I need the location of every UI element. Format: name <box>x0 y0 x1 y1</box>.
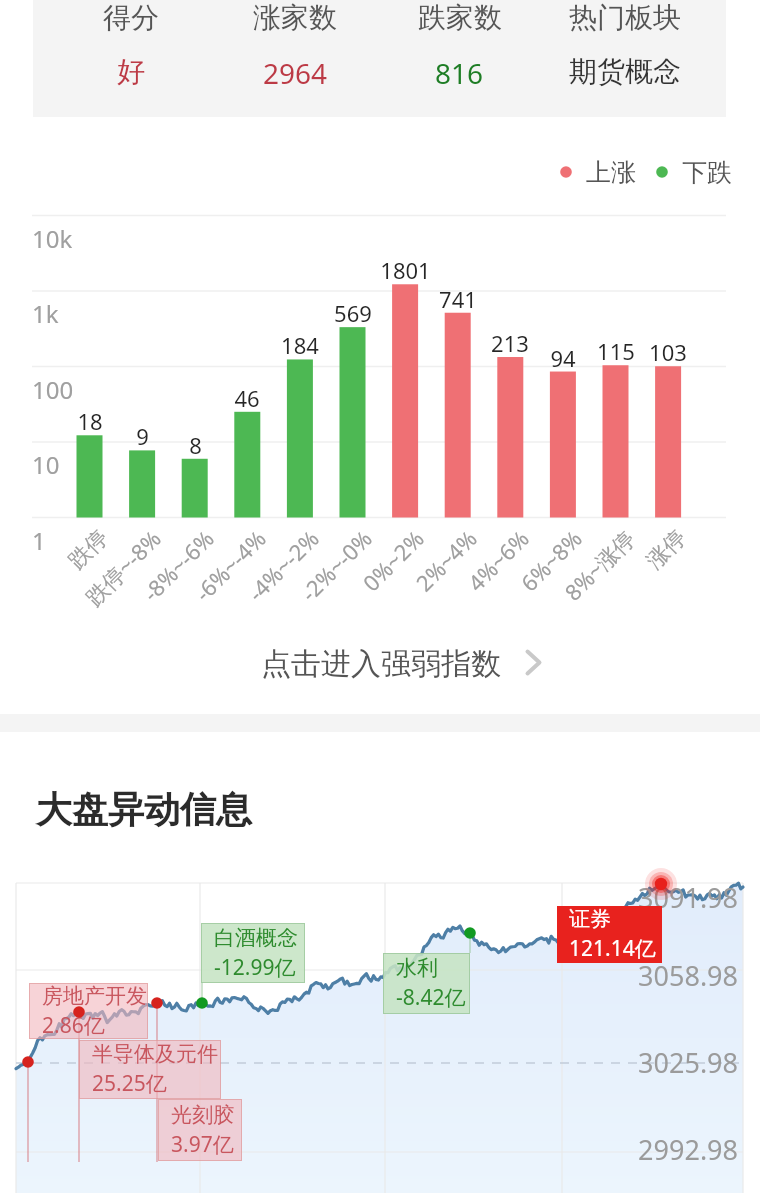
staticText: 741 <box>439 284 477 314</box>
staticText: 光刻胶 <box>171 1102 234 1128</box>
staticText: 房地产开发 <box>42 983 147 1009</box>
staticText: 3.97亿 <box>171 1130 234 1159</box>
staticText: 上涨 <box>586 157 636 188</box>
staticText: -6%~-4% <box>187 523 272 607</box>
button[interactable]: 白酒概念 <box>201 923 305 983</box>
staticText: 25.25亿 <box>92 1069 167 1098</box>
staticText: 期货概念 <box>569 54 681 89</box>
staticText: -2%~-0% <box>293 523 378 607</box>
staticText: 1 <box>32 524 46 557</box>
staticText: -8.42亿 <box>396 983 466 1012</box>
staticText: -8%~-6% <box>135 523 220 607</box>
staticText: 569 <box>334 298 372 328</box>
staticText: 水利 <box>396 955 438 981</box>
staticText: -12.99亿 <box>214 953 296 982</box>
staticText: 4%~6% <box>460 523 535 598</box>
staticText: -4%~-2% <box>240 523 325 607</box>
staticText: 2%~4% <box>408 523 483 598</box>
staticText: 100 <box>32 373 74 406</box>
staticText: 94 <box>550 343 576 373</box>
staticText: 点击进入强弱指数 <box>261 645 501 683</box>
staticText: 白酒概念 <box>214 925 298 951</box>
staticText: 816 <box>435 54 484 92</box>
staticText: 8%~涨停 <box>557 523 641 607</box>
staticText: 证券 <box>569 906 611 932</box>
staticText: 213 <box>491 328 529 358</box>
staticText: 3025.98 <box>638 1044 738 1081</box>
button[interactable]: 得分 <box>33 0 726 117</box>
button[interactable]: 大盘异动信息 <box>36 787 252 832</box>
button[interactable]: 点击进入强弱指数 <box>261 636 551 692</box>
staticText: 大盘异动信息 <box>36 787 252 832</box>
staticText: 0%~2% <box>355 523 430 598</box>
staticText: 184 <box>281 330 319 360</box>
staticText: 18 <box>77 406 103 436</box>
staticText: 好 <box>117 54 145 89</box>
staticText: 3091.98 <box>638 879 738 916</box>
staticText: 3058.98 <box>638 957 738 994</box>
staticText: 2992.98 <box>638 1131 738 1168</box>
staticText: 6%~8% <box>513 523 588 598</box>
staticText: 46 <box>234 383 260 413</box>
button[interactable]: 半导体及元件 <box>79 1040 221 1099</box>
staticText: 得分 <box>103 0 159 35</box>
staticText: 热门板块 <box>569 0 681 35</box>
staticText: 跌停~-8% <box>78 523 167 612</box>
staticText: 121.14亿 <box>569 934 656 963</box>
staticText: 涨停 <box>641 524 692 575</box>
staticText: 2964 <box>263 54 328 92</box>
staticText: 8 <box>189 430 202 460</box>
button[interactable]: 房地产开发 <box>29 983 148 1039</box>
staticText: 下跌 <box>682 157 732 188</box>
staticText: 10k <box>32 222 73 255</box>
staticText: 115 <box>597 336 635 366</box>
button[interactable]: 证券 <box>557 906 662 963</box>
staticText: 跌家数 <box>418 0 502 35</box>
staticText: 涨家数 <box>253 0 337 35</box>
staticText: 9 <box>136 421 149 451</box>
staticText: 103 <box>649 337 687 367</box>
button[interactable]: 水利 <box>383 953 470 1014</box>
staticText: 1k <box>32 297 59 330</box>
button[interactable]: 光刻胶 <box>158 1099 242 1161</box>
staticText: 2.86亿 <box>42 1011 105 1039</box>
staticText: 半导体及元件 <box>92 1041 218 1067</box>
staticText: 跌停 <box>63 524 114 575</box>
staticText: 10 <box>32 448 60 481</box>
staticText: 1801 <box>380 255 431 285</box>
